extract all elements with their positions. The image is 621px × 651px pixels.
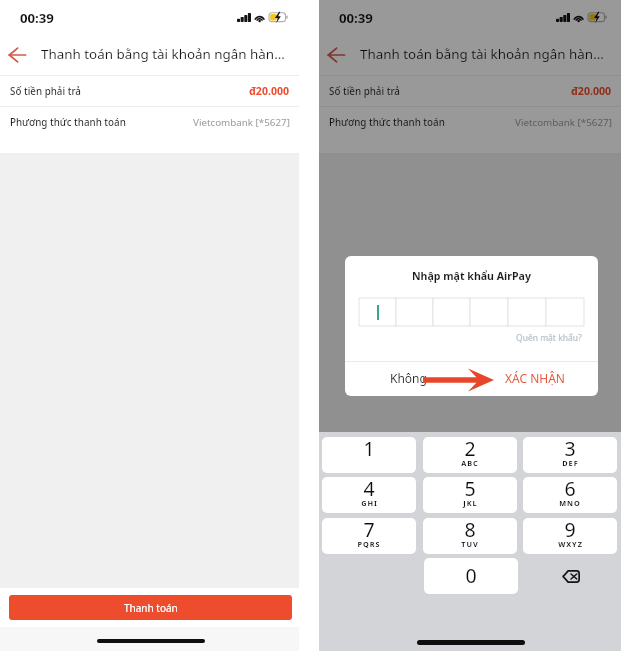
staticText: PQRS [357,539,381,549]
staticText: JKL [463,498,478,508]
button[interactable]: 6 [523,477,617,513]
staticText: 00:39 [339,9,373,27]
button[interactable] [470,298,508,326]
staticText: Phương thức thanh toán [329,116,445,129]
staticText: 9 [564,518,576,543]
staticText: TUV [461,539,479,549]
staticText: đ20.000 [571,84,612,98]
button[interactable]: 9 [523,518,617,554]
staticText: 3 [564,437,576,462]
button[interactable]: 7 [322,518,416,554]
staticText: Nhập mật khẩu AirPay [412,269,531,283]
button[interactable]: Không [345,362,471,396]
button[interactable]: Quên mật khẩu? [510,329,588,347]
staticText: 6 [564,477,576,502]
staticText: Vietcombank [*5627] [193,116,290,129]
staticText: GHI [361,498,378,508]
button[interactable]: 5 [423,477,517,513]
button[interactable] [546,298,584,326]
staticText: Phương thức thanh toán [10,116,126,129]
button[interactable]: Thanh toán [9,595,292,620]
button[interactable]: Back [2,39,34,71]
staticText: Thanh toán bằng tài khoản ngân hàn... [360,45,604,63]
button[interactable]: 2 [423,437,517,473]
button[interactable]: Backspace [523,558,617,594]
staticText: ABC [461,458,479,468]
staticText: 1 [363,437,375,462]
staticText: MNO [559,498,581,508]
button[interactable]: 3 [523,437,617,473]
button[interactable] [359,298,396,326]
button[interactable]: 1 [322,437,416,473]
staticText: WXYZ [558,539,583,549]
staticText: Số tiền phải trả [329,85,400,98]
button[interactable]: 0 [424,558,518,594]
button[interactable]: XÁC NHẬN [471,362,598,396]
staticText: DEF [562,458,579,468]
staticText: 8 [464,518,476,543]
staticText: Quên mật khẩu? [516,332,582,344]
staticText: Số tiền phải trả [10,85,81,98]
staticText: Vietcombank [*5627] [515,116,612,129]
staticText: 4 [363,477,375,502]
staticText: Thanh toán [124,601,178,615]
button[interactable]: Phương thức thanh toán [0,107,299,138]
button[interactable]: 4 [322,477,416,513]
button[interactable]: Số tiền phải trả [319,76,621,106]
button[interactable]: Số tiền phải trả [0,76,299,106]
staticText: 2 [464,437,476,462]
button[interactable]: Phương thức thanh toán [319,107,621,138]
staticText: Không [390,370,427,386]
button[interactable]: 8 [423,518,517,554]
button[interactable]: Back [321,39,353,71]
button[interactable] [433,298,470,326]
staticText: XÁC NHẬN [505,370,565,386]
staticText: 0 [465,562,477,589]
staticText: 5 [464,477,476,502]
staticText: đ20.000 [249,84,290,98]
button[interactable] [508,298,546,326]
staticText: 7 [363,518,375,543]
staticText: Thanh toán bằng tài khoản ngân hàn... [41,45,285,63]
staticText: 00:39 [20,9,54,27]
button[interactable] [396,298,433,326]
